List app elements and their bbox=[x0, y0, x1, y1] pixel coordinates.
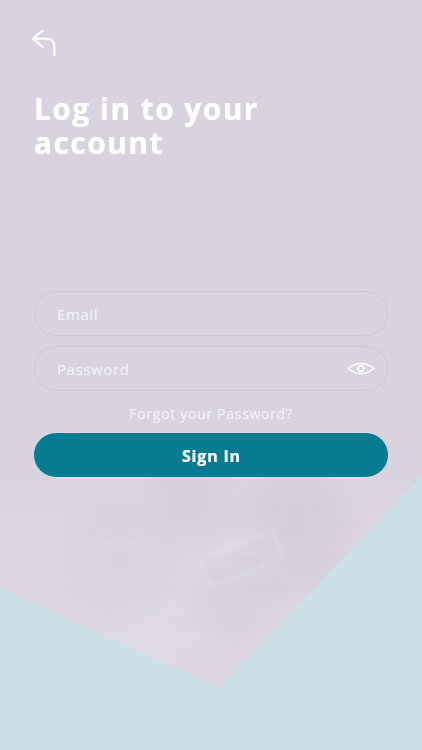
staticText: Log in to your account bbox=[34, 88, 259, 163]
button[interactable]: Back bbox=[25, 22, 65, 62]
staticText: Email bbox=[57, 304, 99, 324]
button[interactable]: Forgot your Password? bbox=[34, 404, 388, 423]
button[interactable]: Sign In bbox=[34, 431, 388, 479]
staticText: Sign In bbox=[182, 445, 241, 467]
button[interactable]: Email bbox=[34, 291, 388, 336]
staticText: Password bbox=[57, 359, 130, 379]
button[interactable]: Password bbox=[34, 346, 388, 391]
other: Show password bbox=[348, 363, 374, 374]
